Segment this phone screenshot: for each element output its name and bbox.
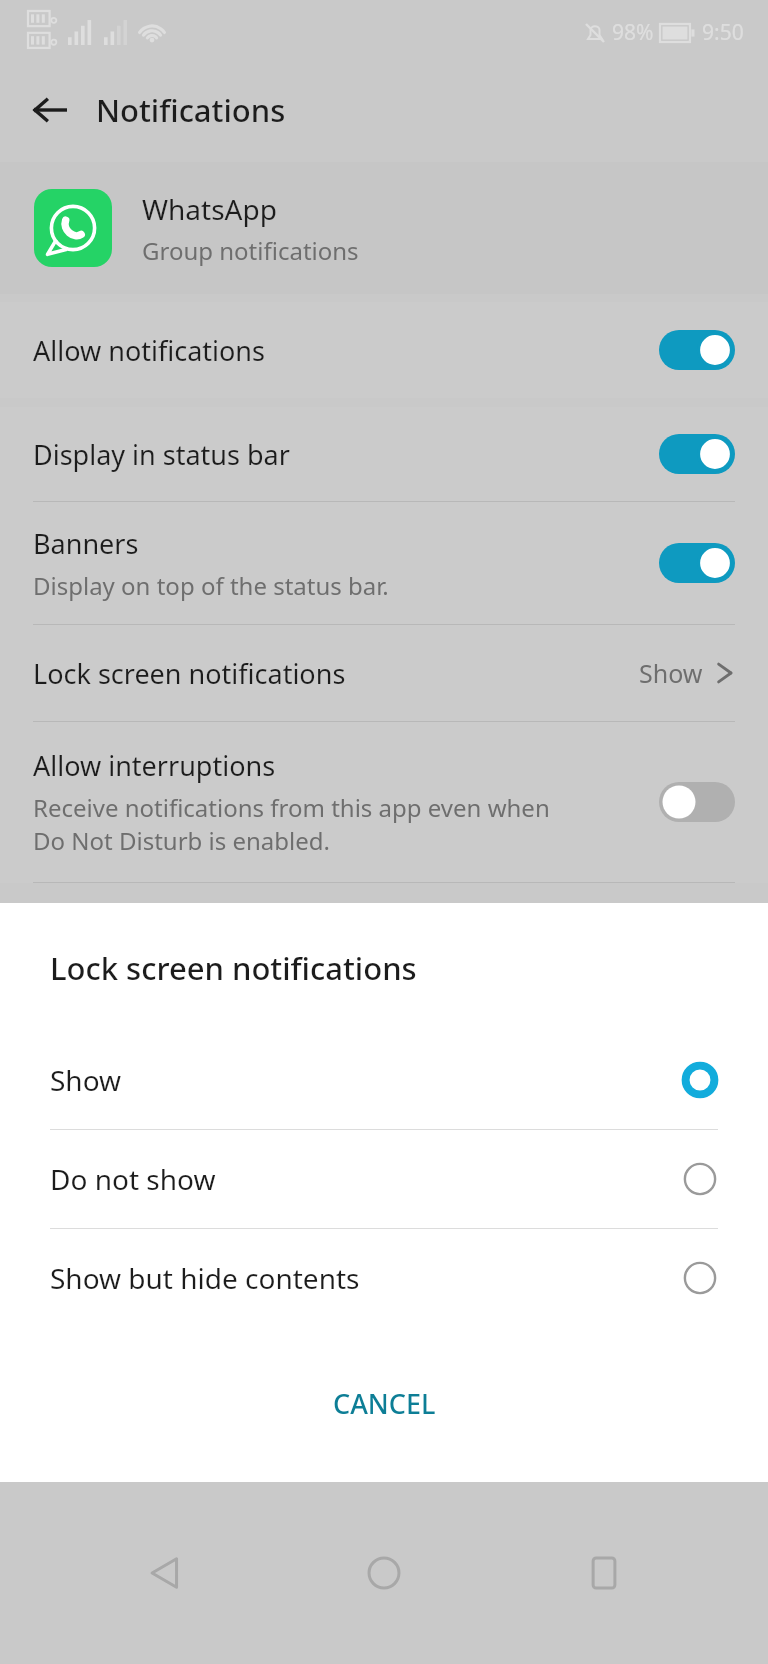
button[interactable]: Display in status bar xyxy=(0,407,768,501)
button[interactable]: Recents xyxy=(549,1518,659,1628)
button[interactable]: Lock screen notifications xyxy=(0,625,768,721)
button[interactable]: Back xyxy=(18,78,82,142)
button[interactable]: Show xyxy=(0,1031,768,1129)
staticText: Display in status bar xyxy=(33,436,290,473)
button[interactable]: Do not show xyxy=(0,1130,768,1228)
staticText: Group notifications xyxy=(142,234,359,267)
staticText: Do not show xyxy=(50,1160,216,1198)
button[interactable]: Show but hide contents xyxy=(0,1229,768,1327)
staticText: Allow notifications xyxy=(33,332,265,369)
staticText: Show xyxy=(50,1061,122,1099)
staticText: Lock screen notifications xyxy=(50,947,417,989)
staticText: Show xyxy=(639,656,703,690)
button[interactable]: CANCEL xyxy=(293,1373,476,1434)
button[interactable]: Home xyxy=(329,1518,439,1628)
staticText: Show but hide contents xyxy=(50,1259,360,1297)
staticText: Allow interruptions xyxy=(33,747,276,784)
button[interactable]: Banners xyxy=(0,502,768,624)
staticText: Display on top of the status bar. xyxy=(33,569,389,602)
staticText: Receive notifications from this app even… xyxy=(33,791,550,857)
button[interactable]: Back xyxy=(110,1518,220,1628)
staticText: CANCEL xyxy=(333,1385,436,1422)
button[interactable]: Allow notifications xyxy=(0,302,768,398)
button[interactable]: WhatsApp xyxy=(0,162,768,294)
staticText: Notifications xyxy=(96,89,286,131)
staticText: Banners xyxy=(33,525,139,562)
button[interactable]: Allow interruptions xyxy=(0,722,768,882)
staticText: 98% xyxy=(612,18,654,47)
staticText: WhatsApp xyxy=(142,190,277,228)
staticText: Lock screen notifications xyxy=(33,655,346,692)
staticText: 9:50 xyxy=(702,18,744,47)
